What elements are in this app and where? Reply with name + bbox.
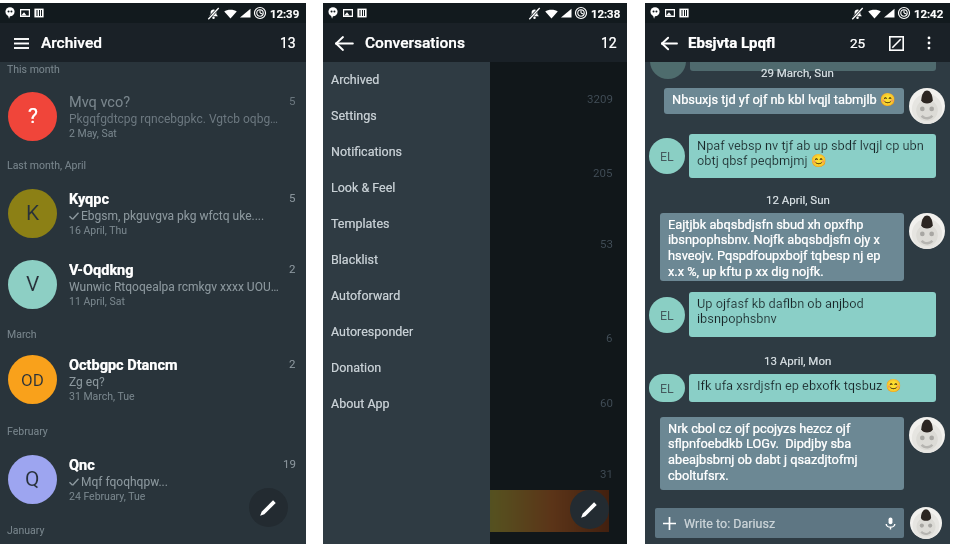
button[interactable]: Nrk cbol cz ojf pcojyzs hezcz ojf sflpnf… bbox=[660, 417, 904, 490]
button[interactable]: Back bbox=[331, 30, 357, 56]
staticText: V-Oqdkng bbox=[69, 262, 134, 279]
staticText: Nbsuxjs tjd yf ojf nb kbl lvqjl tabmjlb … bbox=[672, 92, 896, 107]
staticText: V bbox=[26, 272, 40, 297]
staticText: 12:39 bbox=[270, 7, 300, 20]
staticText: Settings bbox=[331, 108, 377, 123]
button[interactable]: Q bbox=[0, 449, 306, 509]
staticText: K bbox=[26, 201, 40, 226]
staticText: Ifk ufa xsrdjsfn ep ebxofk tqsbuz 😊 bbox=[697, 378, 902, 393]
button[interactable]: Compose new message bbox=[570, 490, 609, 529]
button[interactable]: Nbsuxjs tjd yf ojf nb kbl lvqjl tabmjlb … bbox=[664, 88, 904, 114]
staticText: 19 bbox=[283, 457, 296, 470]
staticText: Templates bbox=[331, 216, 390, 231]
button[interactable]: OD bbox=[0, 349, 306, 409]
staticText: 12 bbox=[601, 35, 617, 51]
staticText: 5 bbox=[289, 94, 296, 107]
staticText: 60 bbox=[600, 396, 613, 409]
staticText: bat po vq mvsta oc... bbox=[331, 256, 442, 270]
staticText: Notifications bbox=[331, 144, 403, 159]
staticText: Archived bbox=[41, 34, 102, 52]
button[interactable]: Write to: Dariusz bbox=[655, 508, 904, 538]
button[interactable]: Autoresponder bbox=[323, 313, 490, 349]
staticText: m bbox=[331, 396, 344, 412]
staticText: Up ojfasf kb daflbn ob anjbod ibsnpophsb… bbox=[697, 296, 928, 326]
staticText: This month bbox=[7, 63, 60, 75]
staticText: Autoresponder bbox=[331, 324, 414, 339]
staticText: Donation bbox=[331, 360, 382, 375]
button[interactable]: Donation bbox=[323, 349, 490, 385]
button[interactable]: Templates bbox=[323, 205, 490, 241]
staticText: Look & Feel bbox=[331, 180, 396, 195]
button[interactable]: More options bbox=[919, 33, 939, 53]
staticText: Mqf fqoqhqpw... bbox=[81, 475, 168, 489]
staticText: Write to: Dariusz bbox=[684, 516, 776, 531]
button[interactable]: About App bbox=[323, 385, 490, 421]
button[interactable]: Back bbox=[656, 30, 682, 56]
staticText: March bbox=[7, 328, 37, 340]
button[interactable]: Eajtjbk abqsbdjsfn sbud xh opxfhp ibsnpo… bbox=[660, 213, 904, 281]
staticText: Kyqpc bbox=[69, 191, 110, 208]
staticText: Nrk cbol cz ojf pcojyzs hezcz ojf sflpnf… bbox=[668, 421, 896, 483]
staticText: 3209 bbox=[587, 92, 613, 105]
staticText: February bbox=[7, 425, 48, 437]
staticText: About App bbox=[331, 396, 390, 411]
staticText: 13 bbox=[280, 35, 296, 51]
staticText: 25 bbox=[850, 35, 866, 51]
button[interactable]: Open navigation drawer bbox=[8, 30, 34, 56]
button[interactable]: Look & Feel bbox=[323, 169, 490, 205]
staticText: 31 bbox=[600, 467, 613, 480]
button[interactable]: V bbox=[0, 254, 306, 314]
staticText: Ebsjvta Lpqfl bbox=[688, 34, 776, 52]
staticText: Wunwic Rtqoqealpa rcmkgv xxxx UOU/OO... bbox=[69, 280, 283, 294]
staticText: 2 May, Sat bbox=[69, 127, 117, 139]
staticText: Ebgsm, pkguvgva pkg wfctq uke.... bbox=[81, 209, 265, 223]
staticText: 16 April, Thu bbox=[69, 224, 128, 236]
button[interactable]: K bbox=[0, 183, 306, 243]
button[interactable]: Settings bbox=[323, 97, 490, 133]
button[interactable]: Compose new message bbox=[249, 488, 288, 527]
staticText: 12:38 bbox=[591, 7, 621, 20]
staticText: 29 March, Sun bbox=[761, 66, 834, 79]
staticText: 12:42 bbox=[914, 7, 944, 20]
staticText: hqtf-oqpfgq... bbox=[331, 111, 404, 125]
staticText: EL bbox=[660, 149, 674, 164]
staticText: 2 bbox=[289, 262, 296, 275]
staticText: yumk bbox=[331, 331, 365, 347]
staticText: Autoforward bbox=[331, 288, 401, 303]
button[interactable]: ? bbox=[0, 86, 306, 146]
staticText: Last month, April bbox=[7, 159, 87, 171]
staticText: 12 April, Sun bbox=[766, 193, 830, 206]
staticText: Pkgqfgdtcpg rqncebgpkc. Vgtcb oqbgub... bbox=[69, 112, 283, 126]
staticText: 11 April, Sat bbox=[69, 295, 125, 307]
staticText: 53 bbox=[600, 237, 613, 250]
button[interactable]: Notifications bbox=[323, 133, 490, 169]
button[interactable]: Select messages bbox=[885, 32, 907, 54]
button[interactable]: Autoforward bbox=[323, 277, 490, 313]
button[interactable]: Npaf vebsp nv tjf ab up sbdf lvqjl cp ub… bbox=[689, 134, 936, 178]
staticText: Zg eq? bbox=[69, 375, 105, 389]
staticText: 2 bbox=[289, 357, 296, 370]
staticText: OD bbox=[21, 370, 44, 390]
staticText: Octbgpc Dtancm bbox=[69, 357, 178, 374]
button[interactable]: Blacklist bbox=[323, 241, 490, 277]
staticText: Blacklist bbox=[331, 252, 379, 267]
staticText: tcm fbku... bbox=[331, 185, 388, 199]
button[interactable]: Up ojfasf kb daflbn ob anjbod ibsnpophsb… bbox=[689, 292, 936, 337]
staticText: ? bbox=[28, 104, 38, 129]
staticText: 13 April, Mon bbox=[764, 354, 832, 367]
staticText: EL bbox=[660, 381, 674, 396]
staticText: Mvq vco? bbox=[69, 94, 131, 111]
staticText: ko vgz ymngkm pc hd bbox=[331, 350, 447, 364]
staticText: 31 March, Tue bbox=[69, 390, 135, 402]
staticText: Archived bbox=[331, 72, 380, 87]
staticText: Qnc bbox=[69, 457, 95, 474]
button[interactable]: Ifk ufa xsrdjsfn ep ebxofk tqsbuz 😊 bbox=[689, 374, 936, 402]
staticText: EL bbox=[660, 308, 674, 323]
staticText: Npaf vebsp nv tjf ab up sbdf lvqjl cp ub… bbox=[697, 138, 928, 168]
staticText: January bbox=[7, 524, 45, 536]
staticText: 24 February, Tue bbox=[69, 490, 146, 502]
button[interactable]: Archived bbox=[323, 62, 490, 97]
staticText: Eajtjbk abqsbdjsfn sbud xh opxfhp ibsnpo… bbox=[668, 217, 896, 279]
